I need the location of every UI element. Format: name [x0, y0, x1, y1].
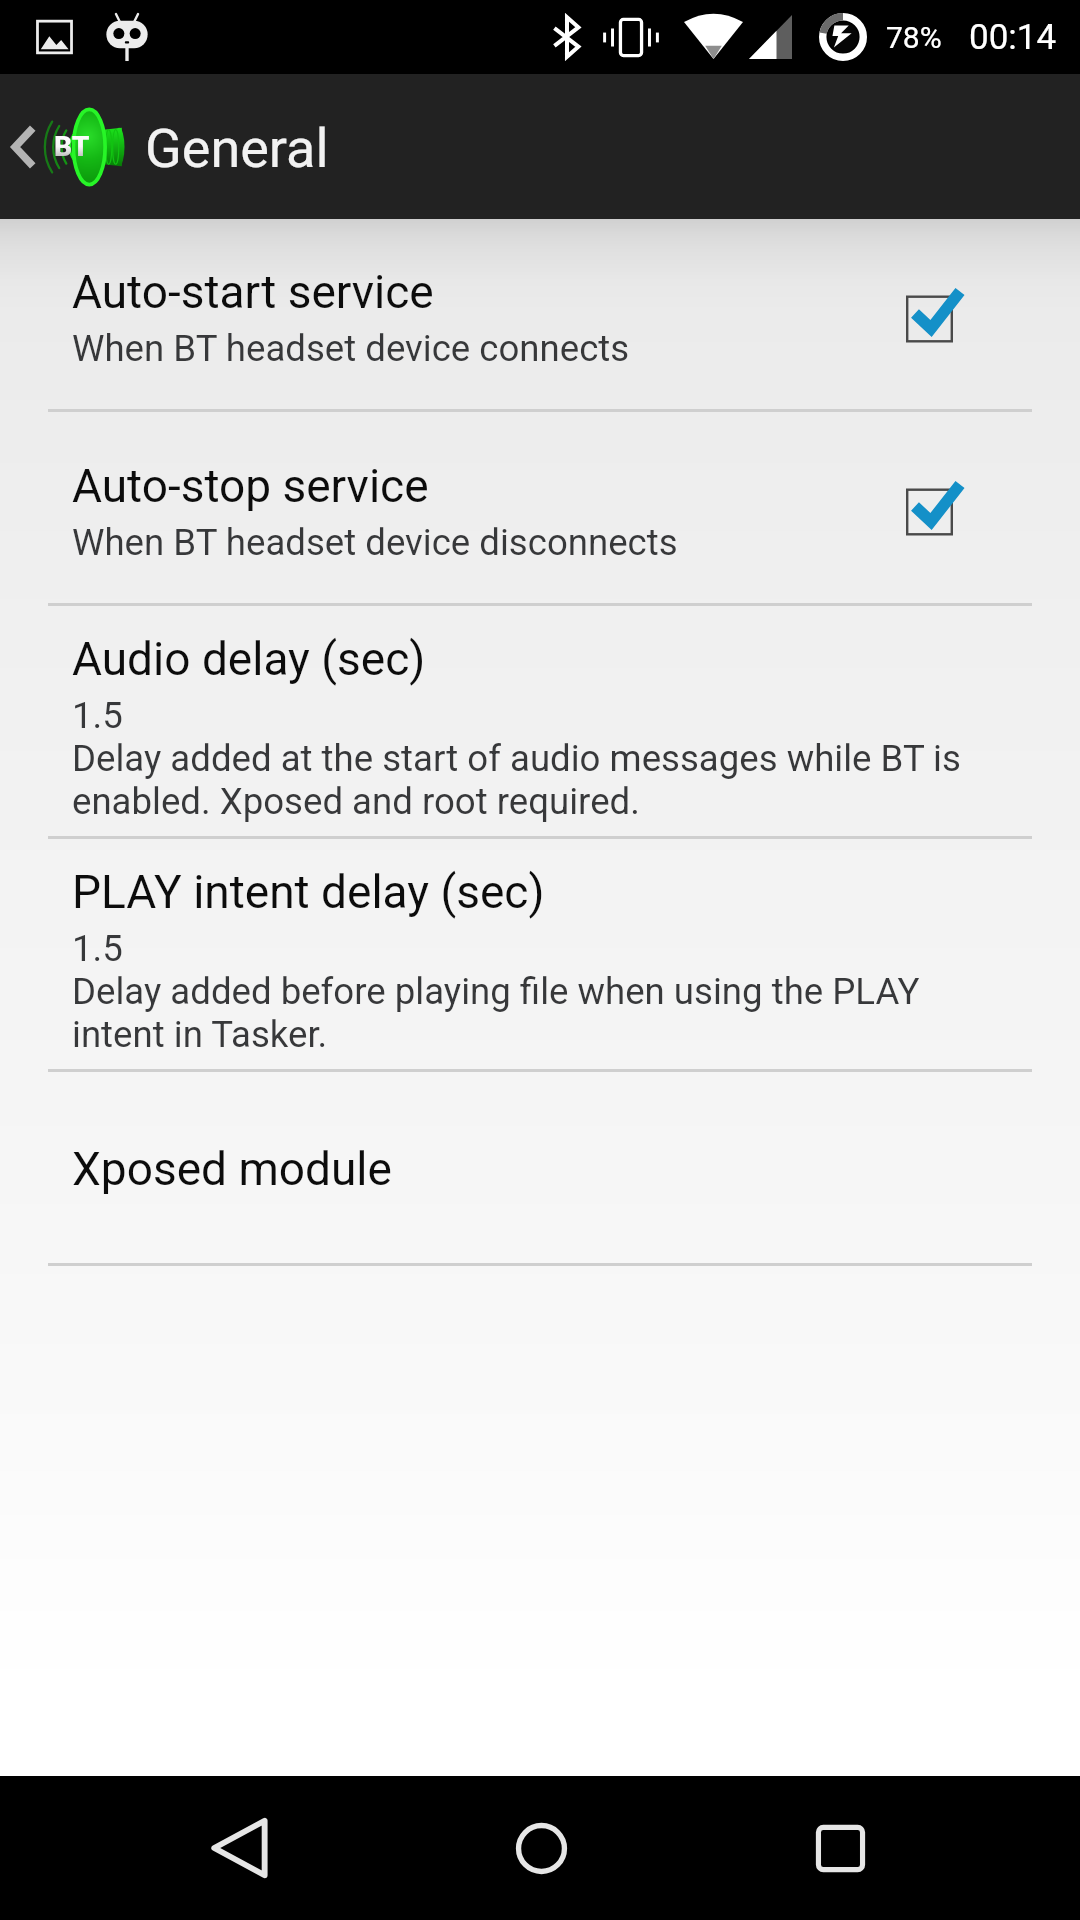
button[interactable]: Back: [0, 1776, 390, 1920]
staticText: 78%: [886, 20, 942, 55]
button[interactable]: Audio delay (sec): [0, 606, 1080, 836]
button[interactable]: Navigate up: [0, 74, 133, 219]
staticText: Xposed module: [72, 1144, 392, 1196]
staticText: When BT headset device connects: [72, 327, 630, 370]
staticText: When BT headset device disconnects: [72, 521, 678, 564]
staticText: 1.5 Delay added before playing file when…: [72, 927, 920, 1056]
button[interactable]: Auto-stop service: [0, 412, 1080, 603]
button[interactable]: Home: [390, 1776, 690, 1920]
button[interactable]: Recent apps: [690, 1776, 1080, 1920]
button[interactable]: Toggle: [906, 464, 1034, 560]
staticText: 00:14: [969, 17, 1057, 58]
staticText: General: [145, 117, 329, 180]
staticText: BT: [54, 130, 90, 163]
button[interactable]: PLAY intent delay (sec): [0, 839, 1080, 1069]
button[interactable]: Toggle: [906, 271, 1034, 367]
button[interactable]: Auto-start service: [0, 219, 1080, 409]
staticText: 1.5 Delay added at the start of audio me…: [72, 694, 961, 823]
staticText: PLAY intent delay (sec): [72, 867, 545, 919]
button[interactable]: Xposed module: [0, 1072, 1080, 1263]
staticText: Auto-stop service: [72, 461, 429, 513]
staticText: Auto-start service: [72, 267, 434, 319]
staticText: Audio delay (sec): [72, 634, 426, 686]
